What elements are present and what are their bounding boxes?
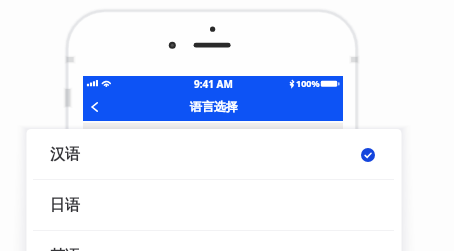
- staticText: 9:41 AM: [183, 77, 244, 91]
- staticText: 汉语: [50, 145, 80, 164]
- button[interactable]: 韩语: [26, 231, 401, 251]
- staticText: 语言选择: [190, 99, 238, 114]
- staticText: 日语: [50, 196, 80, 215]
- button[interactable]: 汉语: [26, 129, 401, 179]
- button[interactable]: Back: [84, 97, 104, 117]
- staticText: 100%: [296, 77, 320, 89]
- staticText: 韩语: [50, 247, 80, 251]
- button[interactable]: 日语: [26, 180, 401, 230]
